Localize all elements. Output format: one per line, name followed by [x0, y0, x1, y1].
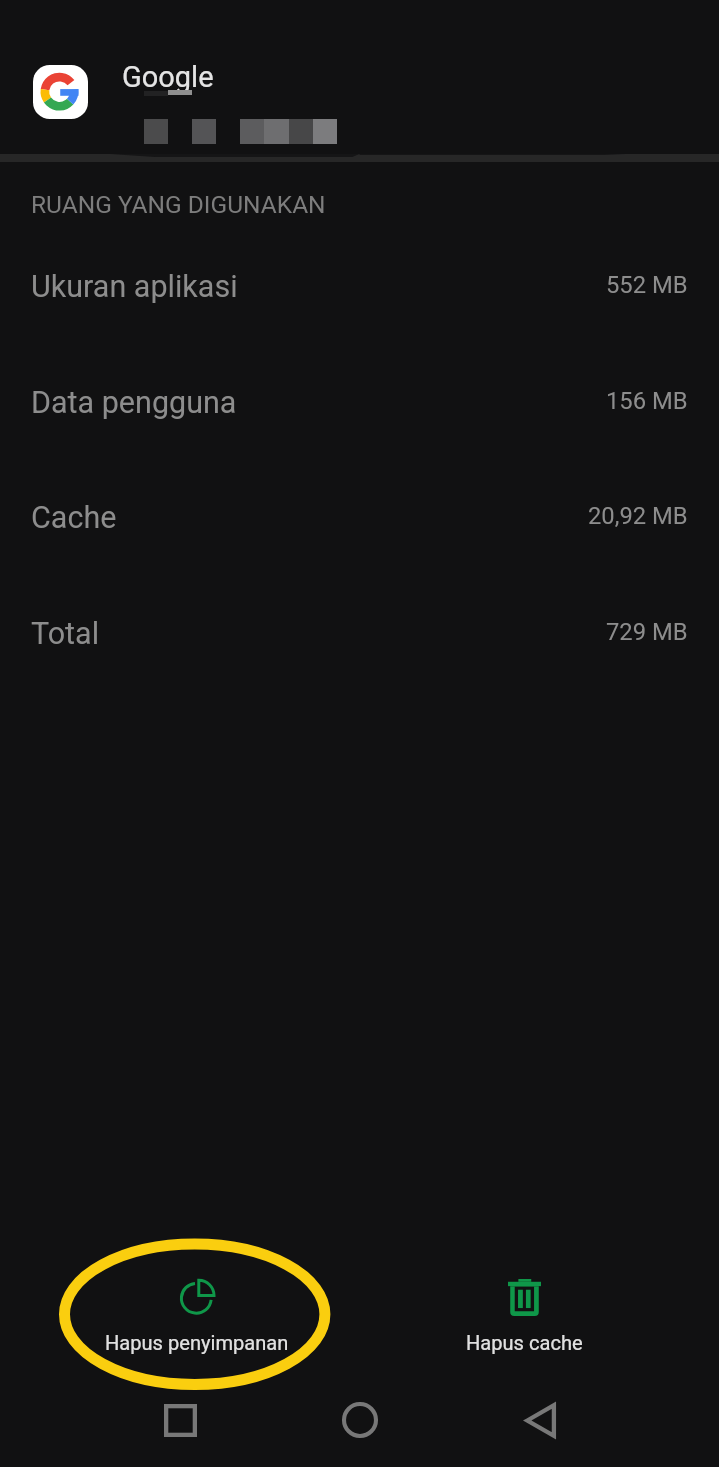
staticText: RUANG YANG DIGUNAKAN — [31, 190, 326, 219]
button[interactable]: Hapus cache — [360, 1254, 719, 1374]
button[interactable]: Ukuran aplikasi — [0, 245, 719, 317]
staticText: Google — [122, 60, 214, 94]
staticText: Hapus penyimpanan — [105, 1331, 289, 1355]
button[interactable]: Total — [0, 592, 719, 664]
staticText: 20,92 MB — [588, 502, 688, 530]
staticText: 156 MB — [606, 387, 688, 415]
button[interactable]: Recents — [135, 1377, 225, 1463]
staticText: Hapus cache — [466, 1331, 583, 1355]
staticText: Cache — [31, 500, 117, 536]
staticText: 729 MB — [606, 618, 688, 646]
button[interactable]: Home — [315, 1377, 405, 1463]
staticText: Ukuran aplikasi — [31, 269, 238, 305]
staticText: Total — [31, 616, 100, 652]
button[interactable]: Cache — [0, 476, 719, 548]
button[interactable]: Data pengguna — [0, 361, 719, 433]
staticText: 552 MB — [606, 271, 688, 299]
staticText: Data pengguna — [31, 385, 237, 421]
button[interactable]: Hapus penyimpanan — [0, 1254, 360, 1374]
button[interactable]: Back — [495, 1377, 585, 1463]
